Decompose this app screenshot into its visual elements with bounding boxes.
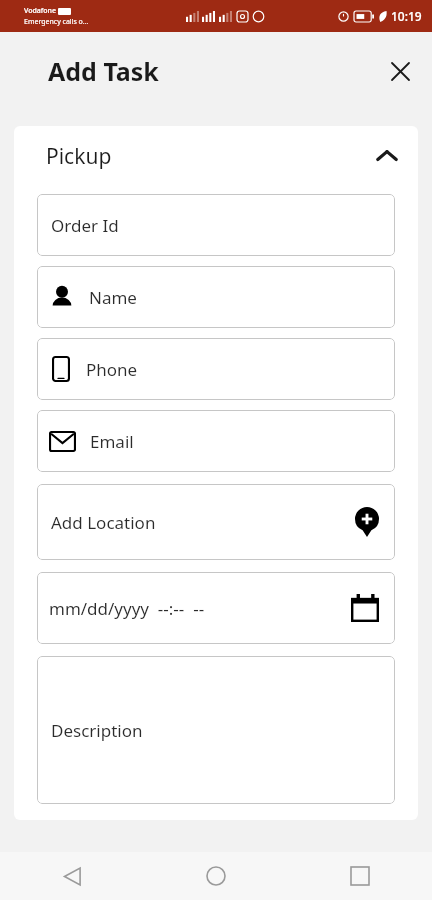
- button[interactable]: Email: [37, 410, 395, 472]
- button[interactable]: Description: [37, 656, 395, 804]
- staticText: 10:19: [391, 8, 422, 24]
- button[interactable]: Pickup: [14, 126, 418, 186]
- staticText: Pickup: [46, 142, 112, 171]
- staticText: Add Task: [48, 54, 159, 88]
- staticText: Phone: [86, 358, 138, 381]
- staticText: Vodafone: [24, 6, 56, 16]
- button[interactable]: Home: [144, 852, 288, 900]
- staticText: Order Id: [51, 214, 119, 237]
- button[interactable]: Phone: [37, 338, 395, 400]
- staticText: Email: [90, 430, 134, 453]
- button[interactable]: Back: [0, 852, 144, 900]
- button[interactable]: Recents: [288, 852, 432, 900]
- button[interactable]: Pick date and time: [37, 572, 395, 644]
- staticText: Add Location: [51, 511, 156, 534]
- button[interactable]: Add Location: [37, 484, 395, 560]
- button[interactable]: Order Id: [37, 194, 395, 256]
- staticText: Name: [89, 286, 137, 309]
- staticText: Emergency calls o...: [24, 17, 89, 27]
- staticText: Description: [51, 719, 143, 742]
- button[interactable]: Close: [378, 49, 422, 93]
- staticText: mm/dd/yyyy --:-- --: [49, 597, 205, 620]
- button[interactable]: Name: [37, 266, 395, 328]
